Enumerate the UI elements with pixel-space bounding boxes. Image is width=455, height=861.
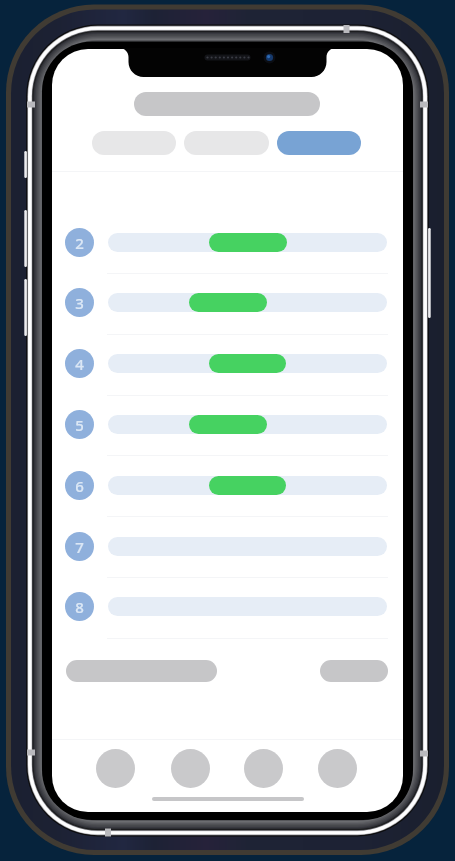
staticText: 5: [75, 415, 84, 435]
button[interactable]: [108, 354, 387, 373]
button[interactable]: Profile: [318, 749, 357, 788]
staticText: 4: [75, 354, 84, 374]
button[interactable]: Filter three selected: [277, 131, 361, 155]
button[interactable]: Primary action: [66, 660, 217, 682]
button[interactable]: [108, 415, 387, 434]
button[interactable]: [108, 476, 387, 495]
staticText: 8: [75, 597, 84, 617]
staticText: 2: [75, 233, 84, 253]
button[interactable]: [108, 293, 387, 312]
button[interactable]: Home: [96, 749, 135, 788]
button[interactable]: Secondary action: [320, 660, 388, 682]
button[interactable]: [108, 233, 387, 252]
button[interactable]: Filter two: [184, 131, 269, 155]
button[interactable]: Search: [171, 749, 210, 788]
staticText: 3: [75, 293, 84, 313]
staticText: 7: [75, 537, 84, 557]
button[interactable]: Filter one: [92, 131, 176, 155]
staticText: 6: [75, 476, 84, 496]
button[interactable]: Favourites: [244, 749, 283, 788]
